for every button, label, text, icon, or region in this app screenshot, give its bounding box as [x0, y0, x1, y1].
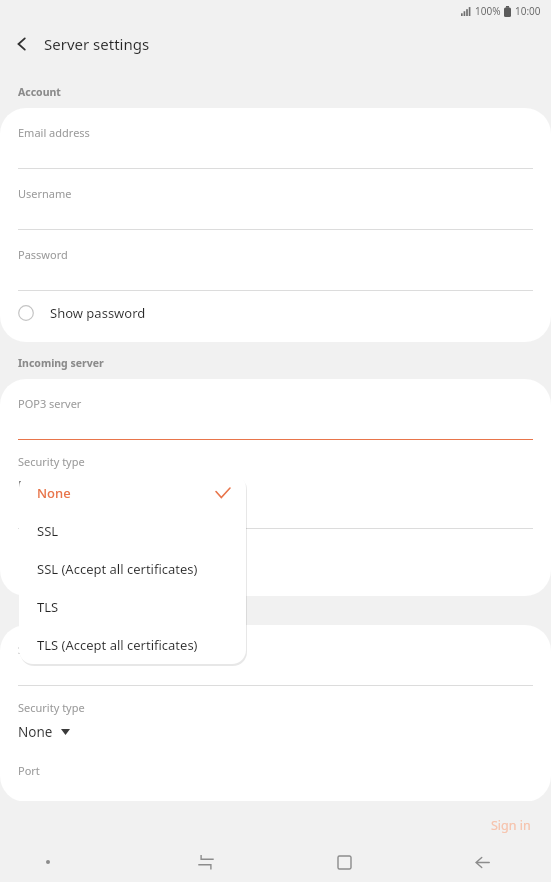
button[interactable]: None — [19, 474, 246, 512]
button[interactable]: Security type — [0, 440, 551, 495]
staticText: SSL (Accept all certificates) — [37, 560, 198, 578]
button[interactable]: Menu — [36, 850, 60, 874]
staticText: Incoming server — [18, 356, 104, 370]
button[interactable]: Recents — [191, 847, 221, 877]
staticText: Username — [18, 186, 72, 201]
staticText: Security type — [18, 700, 85, 715]
staticText: Password — [18, 247, 68, 262]
staticText: 10:00 — [515, 4, 541, 18]
button[interactable]: Navigate up — [0, 22, 44, 66]
staticText: Port — [18, 763, 40, 778]
staticText: Account — [18, 85, 61, 99]
staticText: Email address — [18, 125, 90, 140]
staticText: Security type — [18, 454, 85, 469]
staticText: Server settings — [44, 34, 150, 54]
button[interactable]: Back — [467, 847, 497, 877]
staticText: SSL — [37, 522, 59, 540]
staticText: 100% — [475, 4, 501, 18]
button[interactable]: SSL (Accept all certificates) — [19, 550, 246, 588]
button[interactable]: Security type — [0, 686, 551, 741]
staticText: TLS — [37, 598, 59, 616]
staticText: TLS (Accept all certificates) — [37, 636, 198, 654]
staticText: Show password — [50, 304, 146, 322]
staticText: POP3 server — [18, 396, 82, 411]
staticText: None — [18, 723, 53, 741]
staticText: Sign in — [491, 817, 531, 834]
button[interactable]: Show password — [0, 291, 551, 335]
button[interactable]: Sign in — [483, 811, 539, 840]
staticText: SMTP server — [18, 642, 82, 657]
staticText: None — [18, 477, 53, 495]
staticText: None — [37, 484, 71, 502]
button[interactable]: SSL — [19, 512, 246, 550]
button[interactable]: TLS (Accept all certificates) — [19, 626, 246, 664]
button[interactable]: Home — [329, 847, 359, 877]
button[interactable]: TLS — [19, 588, 246, 626]
